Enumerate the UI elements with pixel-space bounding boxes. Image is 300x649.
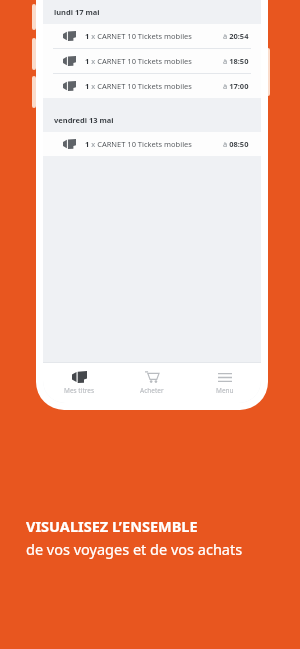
- button[interactable]: Mes titres: [43, 363, 115, 403]
- staticText: à 18:50: [223, 56, 249, 66]
- staticText: Menu: [216, 386, 234, 395]
- staticText: vendredi 13 mai: [54, 115, 114, 125]
- staticText: Mes titres: [64, 386, 95, 395]
- button[interactable]: 1 x CARNET 10 Tickets mobiles: [43, 49, 261, 73]
- staticText: VISUALISEZ L’ENSEMBLE: [26, 516, 198, 536]
- button[interactable]: 1 x CARNET 10 Tickets mobiles: [43, 132, 261, 156]
- staticText: à 20:54: [223, 31, 249, 41]
- button[interactable]: 1 x CARNET 10 Tickets mobiles: [43, 24, 261, 48]
- staticText: 1 x CARNET 10 Tickets mobiles: [85, 31, 192, 41]
- staticText: 1 x CARNET 10 Tickets mobiles: [85, 139, 192, 149]
- staticText: à 17:00: [223, 81, 249, 91]
- staticText: de vos voyages et de vos achats: [26, 539, 243, 559]
- button[interactable]: Acheter: [115, 363, 188, 403]
- other: Acheter: [145, 371, 159, 383]
- staticText: 1 x CARNET 10 Tickets mobiles: [85, 81, 192, 91]
- staticText: à 08:50: [223, 139, 249, 149]
- button[interactable]: 1 x CARNET 10 Tickets mobiles: [43, 74, 261, 98]
- staticText: Acheter: [140, 386, 164, 395]
- staticText: 1 x CARNET 10 Tickets mobiles: [85, 56, 192, 66]
- staticText: lundi 17 mai: [54, 7, 100, 17]
- button[interactable]: Menu: [188, 363, 261, 403]
- other: Menu: [218, 372, 232, 383]
